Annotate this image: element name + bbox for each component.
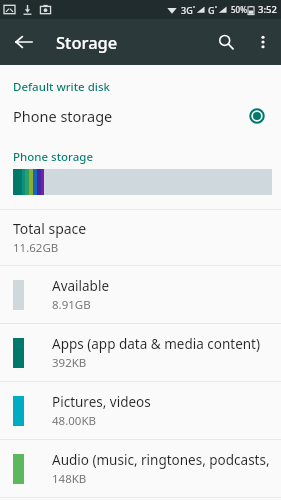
staticText: Available <box>52 277 109 295</box>
staticText: Phone storage <box>13 106 113 126</box>
button[interactable]: Available <box>0 266 281 323</box>
staticText: G <box>208 4 215 16</box>
staticText: ᴿ <box>215 4 218 11</box>
staticText: Apps (app data & media content) <box>52 335 261 353</box>
staticText: 3G <box>181 4 193 16</box>
staticText: 48.00KB <box>52 413 96 429</box>
staticText: 148KB <box>52 471 87 487</box>
staticText: 392KB <box>52 355 87 371</box>
button[interactable]: Pictures, videos <box>0 382 281 439</box>
staticText: 3:52 <box>258 3 277 16</box>
button[interactable]: Total space <box>0 210 281 265</box>
staticText: Pictures, videos <box>52 393 151 411</box>
staticText: ᴿ <box>193 4 196 11</box>
staticText: Storage <box>56 31 118 53</box>
staticText: 50% <box>231 4 247 15</box>
button[interactable]: Apps (app data & media content) <box>0 324 281 381</box>
button[interactable]: Back <box>6 24 42 60</box>
button[interactable]: Audio (music, ringtones, podcasts, et.. <box>0 440 281 497</box>
staticText: Default write disk <box>13 79 110 95</box>
staticText: 11.62GB <box>13 240 59 256</box>
button[interactable]: More options <box>245 24 281 60</box>
staticText: Audio (music, ringtones, podcasts, et.. <box>52 451 273 469</box>
staticText: Phone storage <box>13 149 94 165</box>
staticText: 8.91GB <box>52 297 91 313</box>
button[interactable]: Phone storage <box>0 99 281 133</box>
staticText: Total space <box>13 219 87 238</box>
button[interactable]: Search <box>207 23 245 61</box>
